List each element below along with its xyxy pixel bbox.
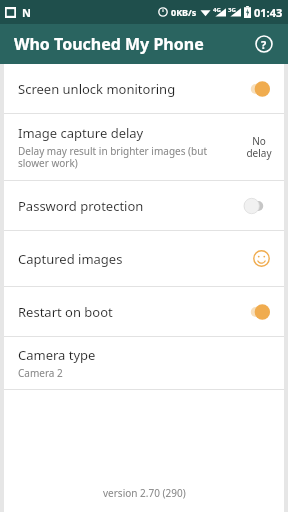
button[interactable]: Camera type	[4, 337, 284, 389]
button[interactable]: Help	[250, 30, 278, 58]
staticText: 0KB/s	[171, 6, 197, 18]
button[interactable]: Restart on boot	[4, 287, 284, 336]
button[interactable]: Password protection	[4, 181, 284, 230]
staticText: Delay may result in brighter images (but…	[18, 144, 238, 170]
staticText: version 2.70 (290)	[103, 486, 186, 500]
staticText: Captured images	[18, 250, 253, 268]
staticText: 4G	[213, 6, 221, 14]
staticText: 01:43	[254, 5, 283, 20]
staticText: No delay	[246, 134, 272, 160]
button[interactable]: Image capture delay	[4, 114, 284, 180]
staticText: Password protection	[18, 197, 244, 215]
staticText: Screen unlock monitoring	[18, 80, 244, 98]
staticText: Restart on boot	[18, 303, 244, 321]
staticText: Camera 2	[18, 366, 63, 380]
staticText: Camera type	[18, 346, 96, 364]
button[interactable]: Screen unlock monitoring	[4, 64, 284, 113]
staticText: 3G	[228, 6, 236, 14]
staticText: ?	[261, 37, 267, 52]
staticText: Image capture delay	[18, 124, 144, 142]
staticText: N	[22, 5, 31, 20]
staticText: Who Touched My Phone	[14, 33, 204, 55]
button[interactable]: Captured images	[4, 231, 284, 286]
